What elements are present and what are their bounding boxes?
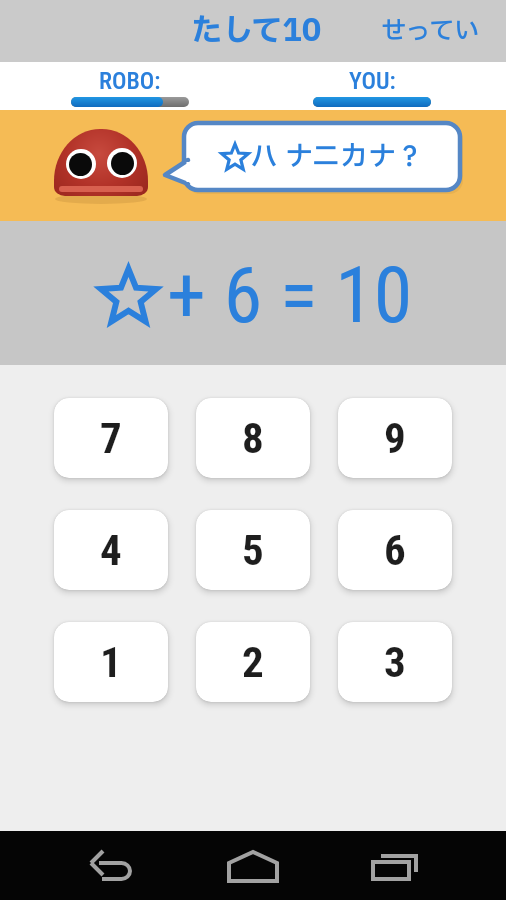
staticText: ROBO: [99,67,161,95]
staticText: 2 [242,637,264,687]
button[interactable]: 6 [338,510,452,590]
staticText: 4 [100,525,122,575]
staticText: + 6 = 10 [167,250,413,341]
staticText: 7 [100,413,122,463]
button[interactable]: 5 [196,510,310,590]
button[interactable]: 1 [54,622,168,702]
staticText: 8 [242,413,264,463]
button[interactable]: せってい [381,0,506,62]
button[interactable]: 7 [54,398,168,478]
staticText: 1 [100,637,122,687]
staticText: 5 [242,525,264,575]
button[interactable]: 4 [54,510,168,590]
button[interactable]: 3 [338,622,452,702]
staticText: YOU: [349,67,396,95]
button[interactable]: 2 [196,622,310,702]
staticText: たして10 [191,8,322,54]
button[interactable] [0,831,168,900]
button[interactable]: 9 [338,398,452,478]
staticText: 6 [384,525,406,575]
staticText: ハ ナニカナ？ [250,136,425,178]
staticText: せってい [381,13,480,50]
button[interactable] [168,831,337,900]
staticText: 3 [384,637,406,687]
staticText: 9 [384,413,406,463]
button[interactable]: 8 [196,398,310,478]
button[interactable] [337,831,506,900]
